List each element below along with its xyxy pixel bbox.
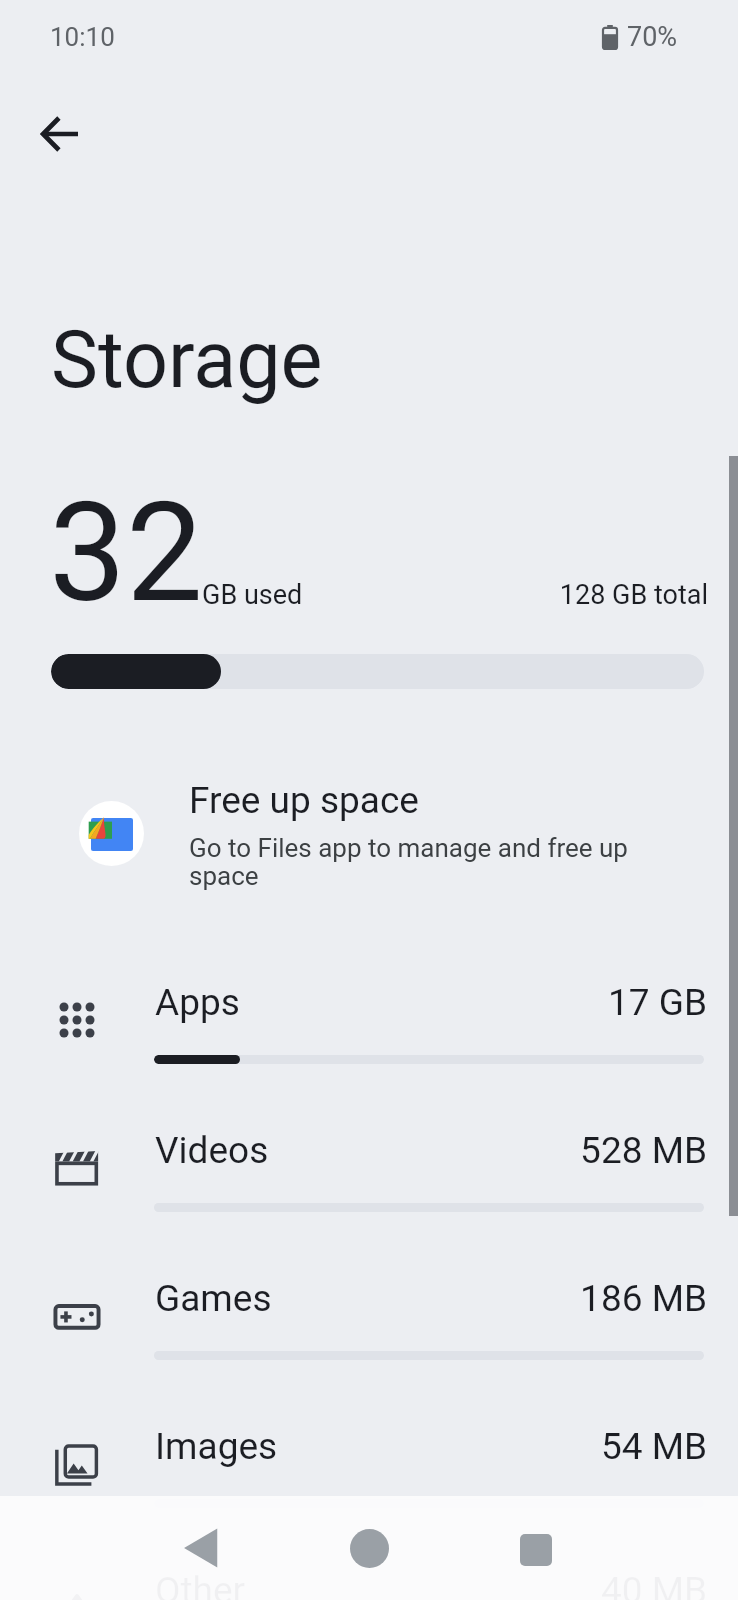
button[interactable]: Other [0,1552,738,1600]
button[interactable]: Free up space [0,770,738,896]
button[interactable]: Games [0,1260,738,1408]
staticText: Images [155,1425,278,1468]
button[interactable]: Home [327,1506,411,1590]
staticText: Videos [155,1129,269,1172]
staticText: 186 MB [0,1277,707,1320]
button[interactable]: Videos [0,1112,738,1260]
staticText: GB used [202,579,303,611]
staticText: 32 [49,473,203,634]
staticText: 528 MB [0,1129,707,1172]
staticText: 70% [627,21,678,53]
staticText: Storage [51,314,323,407]
button[interactable]: Images [0,1408,738,1556]
staticText: Go to Files app to manage and free up sp… [189,833,639,892]
staticText: Free up space [189,779,419,822]
button[interactable]: Recent apps [494,1508,578,1592]
staticText: 128 GB total [0,579,708,611]
button[interactable]: Apps [0,964,738,1112]
staticText: Games [155,1277,272,1320]
staticText: Other [155,1569,246,1600]
button[interactable]: Navigate up [26,100,94,168]
staticText: 10:10 [50,22,115,52]
staticText: 17 GB [0,981,707,1024]
button[interactable]: Back [159,1506,243,1590]
staticText: 54 MB [0,1425,707,1468]
staticText: Apps [155,981,240,1024]
